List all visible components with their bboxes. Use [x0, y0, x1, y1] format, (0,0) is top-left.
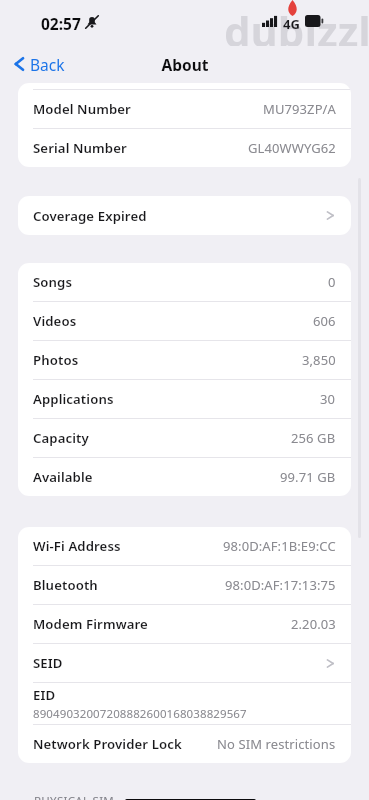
staticText: Serial Number — [33, 139, 127, 157]
staticText: 0 — [328, 273, 336, 291]
staticText: Coverage Expired — [33, 207, 147, 225]
staticText: Model Number — [33, 100, 131, 118]
button[interactable]: Model Number — [18, 90, 351, 128]
staticText: 89049032007208882600168038829567 — [33, 706, 247, 722]
staticText: Applications — [33, 390, 114, 408]
staticText: GL40WWYG62 — [248, 139, 336, 157]
button[interactable]: Back — [8, 46, 71, 82]
button[interactable]: Available — [18, 458, 351, 496]
staticText: Modem Firmware — [33, 615, 148, 633]
staticText: Songs — [33, 273, 73, 291]
staticText: About — [161, 54, 209, 75]
button[interactable]: Bluetooth — [18, 566, 351, 604]
staticText: No SIM restrictions — [217, 735, 336, 753]
staticText: Available — [33, 468, 93, 486]
staticText: Network Provider Lock — [33, 735, 182, 753]
staticText: dubizzle — [224, 2, 369, 46]
staticText: 606 — [313, 312, 336, 330]
staticText: Back — [30, 54, 65, 75]
staticText: SEID — [33, 654, 63, 672]
button[interactable]: SEID — [18, 644, 351, 682]
staticText: 30 — [320, 390, 336, 408]
button[interactable]: Serial Number — [18, 129, 351, 167]
staticText: MU793ZP/A — [263, 100, 336, 118]
staticText: Photos — [33, 351, 79, 369]
button[interactable]: Coverage Expired — [18, 196, 351, 235]
staticText: 99.71 GB — [280, 468, 336, 486]
button[interactable]: Applications — [18, 380, 351, 418]
staticText: 3,850 — [302, 351, 336, 369]
staticText: Videos — [33, 312, 77, 330]
button[interactable]: Modem Firmware — [18, 605, 351, 643]
staticText: EID — [33, 686, 56, 704]
staticText: 256 GB — [291, 429, 336, 447]
button[interactable]: Wi-Fi Address — [18, 527, 351, 565]
button[interactable]: Songs — [18, 263, 351, 301]
staticText: Capacity — [33, 429, 89, 447]
staticText: 98:0D:AF:1B:E9:CC — [223, 537, 336, 555]
button[interactable]: Capacity — [18, 419, 351, 457]
staticText: Bluetooth — [33, 576, 98, 594]
button[interactable]: Photos — [18, 341, 351, 379]
button[interactable]: Videos — [18, 302, 351, 340]
staticText: 2.20.03 — [291, 615, 336, 633]
staticText: 4G — [283, 15, 300, 33]
staticText: Wi-Fi Address — [33, 537, 121, 555]
button[interactable]: EID — [18, 683, 351, 724]
staticText: PHYSICAL SIM — [34, 793, 115, 800]
staticText: 02:57 — [41, 13, 81, 34]
staticText: 98:0D:AF:17:13:75 — [225, 576, 336, 594]
button[interactable]: Network Provider Lock — [18, 725, 351, 763]
